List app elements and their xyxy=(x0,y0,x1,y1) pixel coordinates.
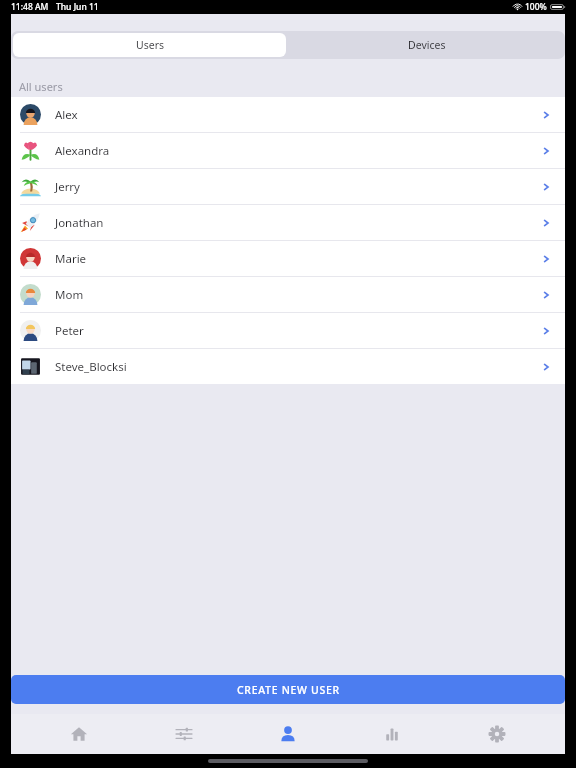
button[interactable]: Steve_Blocksi xyxy=(11,349,565,384)
button[interactable]: Mom xyxy=(11,277,565,312)
button[interactable]: Alexandra xyxy=(11,133,565,168)
button[interactable]: Peter xyxy=(11,313,565,348)
staticText: Jonathan xyxy=(55,215,104,231)
button[interactable]: Jonathan xyxy=(11,205,565,240)
button[interactable]: Home xyxy=(43,714,115,754)
button[interactable]: Users xyxy=(252,714,324,754)
staticText: Thu Jun 11 xyxy=(56,1,99,13)
staticText: Alexandra xyxy=(55,143,110,159)
staticText: All users xyxy=(19,79,63,94)
button[interactable]: CREATE NEW USER xyxy=(11,675,565,704)
staticText: Marie xyxy=(55,251,87,267)
button[interactable]: Alex xyxy=(11,97,565,132)
staticText: Peter xyxy=(55,323,84,339)
staticText: Users xyxy=(136,38,164,52)
button[interactable]: Settings xyxy=(461,714,533,754)
staticText: Alex xyxy=(55,107,78,123)
button[interactable]: Users xyxy=(13,33,286,57)
button[interactable]: Controls xyxy=(148,714,220,754)
button[interactable]: Marie xyxy=(11,241,565,276)
button[interactable]: Statistics xyxy=(356,714,428,754)
button[interactable]: Devices xyxy=(288,31,565,59)
staticText: Devices xyxy=(408,38,446,52)
staticText: 100% xyxy=(525,1,547,13)
staticText: CREATE NEW USER xyxy=(237,683,340,697)
staticText: Jerry xyxy=(55,179,80,195)
button[interactable]: Jerry xyxy=(11,169,565,204)
staticText: 11:48 AM xyxy=(11,1,49,13)
staticText: Steve_Blocksi xyxy=(55,359,127,375)
staticText: Mom xyxy=(55,287,84,303)
